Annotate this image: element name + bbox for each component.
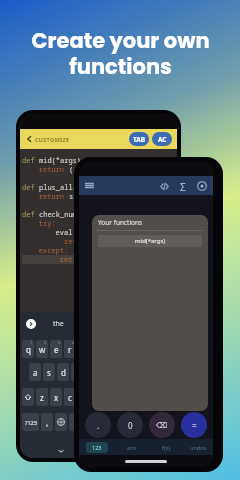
staticText: eval — [22, 228, 73, 237]
staticText: ?123 — [25, 419, 37, 426]
staticText: ⌫ — [156, 421, 168, 430]
staticText: def — [22, 210, 39, 219]
staticText: w — [39, 344, 46, 355]
button[interactable]: f(x) — [149, 439, 184, 455]
button[interactable]: , — [41, 413, 53, 431]
staticText: x — [54, 392, 59, 403]
button[interactable]: g — [85, 363, 97, 381]
button[interactable]: ⌫ — [149, 412, 175, 438]
staticText: mid(*args) — [135, 237, 166, 245]
staticText: try: — [22, 219, 56, 228]
staticText: . — [97, 420, 100, 431]
staticText: def — [22, 156, 39, 165]
button[interactable]: TAB — [129, 132, 149, 146]
button[interactable]: z — [36, 388, 48, 406]
button[interactable]: r — [64, 340, 76, 358]
button[interactable]: x — [50, 388, 62, 406]
staticText: g — [89, 367, 94, 378]
staticText: ret — [22, 255, 73, 264]
button[interactable]: Sum — [177, 180, 189, 192]
staticText: Your functions — [98, 218, 143, 227]
staticText: r — [68, 344, 72, 355]
button[interactable]: c — [64, 388, 76, 406]
button[interactable]: More suggestions — [26, 319, 36, 329]
staticText: the — [53, 319, 64, 329]
button[interactable] — [22, 388, 34, 406]
button[interactable]: 0 — [117, 412, 143, 438]
button[interactable] — [69, 413, 81, 431]
staticText: f(x) — [162, 444, 171, 451]
staticText: ( — [69, 165, 74, 174]
button[interactable]: . — [85, 412, 111, 438]
button[interactable]: Menu — [84, 180, 95, 191]
button[interactable]: ans — [114, 439, 149, 455]
staticText: ret — [22, 237, 77, 246]
staticText: ans — [127, 444, 137, 451]
staticText: e — [54, 344, 59, 355]
button[interactable]: Code — [158, 180, 170, 192]
button[interactable]: t — [78, 340, 90, 358]
staticText: 3 — [58, 340, 61, 345]
button[interactable]: d — [57, 363, 69, 381]
button[interactable]: . — [83, 413, 95, 431]
button[interactable]: w — [36, 340, 48, 358]
button[interactable]: a — [29, 363, 41, 381]
staticText: return — [22, 192, 69, 201]
button[interactable]: e — [50, 340, 62, 358]
button[interactable]: v — [78, 388, 90, 406]
button[interactable] — [55, 413, 67, 431]
button[interactable]: = — [181, 412, 207, 438]
staticText: Σ — [180, 180, 186, 192]
button[interactable]: mid(*args) — [98, 235, 202, 247]
staticText: undos — [190, 444, 207, 451]
staticText: s — [47, 367, 51, 378]
staticText: CUSTOMIZE — [35, 136, 70, 143]
button[interactable]: f — [71, 363, 83, 381]
button[interactable]: Settings — [196, 180, 208, 192]
staticText: Create your own functions — [31, 26, 210, 81]
button[interactable]: 123 — [79, 439, 114, 455]
staticText: 2 — [44, 340, 47, 345]
button[interactable]: q — [22, 340, 34, 358]
button[interactable]: ?123 — [22, 413, 39, 431]
staticText: q — [26, 344, 31, 355]
staticText: mid(*args): — [39, 156, 86, 165]
button[interactable]: AC — [152, 132, 172, 146]
button[interactable]: s — [43, 363, 55, 381]
button[interactable]: CUSTOMIZE — [20, 129, 177, 149]
staticText: check_num(x): — [39, 210, 94, 219]
button[interactable]: undos — [184, 439, 213, 455]
staticText: z — [40, 392, 44, 403]
staticText: AC — [158, 135, 167, 144]
staticText: 123 — [92, 444, 102, 451]
